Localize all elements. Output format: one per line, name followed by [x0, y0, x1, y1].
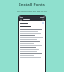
button[interactable] [19, 56, 45, 58]
button[interactable]: Menu [19, 18, 45, 21]
button[interactable] [19, 54, 45, 56]
button[interactable] [19, 44, 45, 46]
staticText: Get started with any app on iOS [17, 10, 47, 13]
button[interactable] [19, 42, 45, 44]
button[interactable] [19, 50, 45, 52]
button[interactable] [19, 46, 45, 48]
button[interactable] [19, 40, 45, 42]
button[interactable] [19, 34, 45, 36]
button[interactable] [19, 28, 45, 30]
button[interactable] [19, 48, 45, 50]
button[interactable]: Add [20, 21, 44, 25]
button[interactable] [19, 30, 45, 32]
button[interactable] [19, 36, 45, 38]
button[interactable] [19, 38, 45, 40]
button[interactable] [19, 52, 45, 54]
button[interactable]: Menu [20, 19, 22, 21]
staticText: Install Fonts [19, 2, 45, 8]
button[interactable] [19, 32, 45, 34]
